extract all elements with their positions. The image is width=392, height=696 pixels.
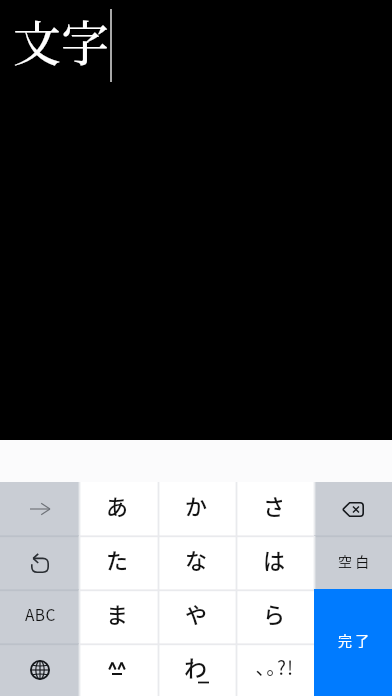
staticText: 文字 bbox=[13, 6, 110, 75]
button[interactable]: な bbox=[158, 536, 236, 590]
button[interactable]: ま bbox=[79, 590, 158, 644]
staticText: か bbox=[185, 489, 208, 521]
button[interactable]: ら bbox=[236, 590, 314, 644]
button[interactable]: Next candidate bbox=[0, 482, 79, 536]
staticText: は bbox=[263, 543, 286, 575]
button[interactable]: あ bbox=[79, 482, 158, 536]
button[interactable]: わ bbox=[158, 644, 236, 696]
button[interactable]: Undo bbox=[0, 536, 79, 590]
staticText: ､｡?! bbox=[256, 653, 295, 681]
staticText: わ bbox=[184, 650, 207, 683]
button[interactable]: Emoji bbox=[79, 644, 158, 696]
button[interactable]: ABC bbox=[0, 590, 79, 644]
staticText: 空白 bbox=[338, 551, 373, 571]
staticText: た bbox=[106, 543, 129, 575]
button[interactable]: 空白 bbox=[314, 536, 392, 590]
staticText: な bbox=[185, 543, 208, 575]
button[interactable]: や bbox=[158, 590, 236, 644]
button[interactable]: た bbox=[79, 536, 158, 590]
button[interactable]: ､｡?! bbox=[236, 644, 314, 696]
button[interactable]: Change keyboard bbox=[0, 644, 79, 696]
button[interactable]: Text input area bbox=[0, 0, 392, 440]
button[interactable]: か bbox=[158, 482, 236, 536]
staticText: や bbox=[185, 597, 208, 629]
button[interactable]: は bbox=[236, 536, 314, 590]
staticText: 完了 bbox=[338, 630, 373, 650]
staticText: さ bbox=[263, 489, 286, 521]
button[interactable]: Delete bbox=[314, 482, 392, 536]
staticText: あ bbox=[106, 489, 129, 521]
staticText: ら bbox=[263, 597, 286, 629]
button[interactable]: さ bbox=[236, 482, 314, 536]
button[interactable]: 完了 bbox=[314, 589, 392, 696]
staticText: ま bbox=[106, 597, 129, 629]
staticText: ABC bbox=[25, 603, 56, 625]
